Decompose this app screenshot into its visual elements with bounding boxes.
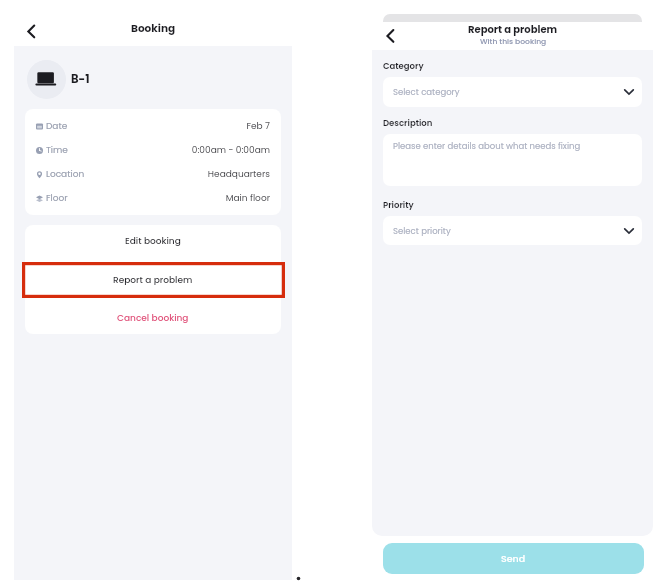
staticText: Report a problem <box>468 22 558 36</box>
staticText: Priority <box>383 199 414 211</box>
button[interactable]: Report a problem <box>25 257 281 303</box>
staticText: Description <box>383 117 433 129</box>
button[interactable]: Edit booking <box>25 225 281 257</box>
staticText: Please enter details about what needs fi… <box>393 140 581 152</box>
staticText: Booking <box>131 21 176 36</box>
button[interactable]: Back <box>376 25 398 47</box>
button[interactable]: Cancel booking <box>25 303 281 334</box>
staticText: Category <box>383 60 424 72</box>
staticText: Select priority <box>393 225 451 237</box>
staticText: Main floor <box>68 192 270 205</box>
staticText: Feb 7 <box>68 120 270 133</box>
button[interactable]: Back <box>20 17 42 39</box>
staticText: Select category <box>393 86 460 98</box>
button[interactable]: Please enter details about what needs fi… <box>383 134 642 186</box>
button[interactable]: Select priority <box>383 216 642 245</box>
button[interactable]: Send <box>383 543 644 574</box>
staticText: Location <box>46 168 85 181</box>
staticText: Edit booking <box>125 235 181 248</box>
staticText: Report a problem <box>113 274 193 287</box>
staticText: Headquarters <box>85 168 270 181</box>
staticText: Floor <box>46 192 68 205</box>
staticText: Date <box>46 120 68 133</box>
staticText: Send <box>501 552 526 565</box>
staticText: Cancel booking <box>117 312 189 325</box>
staticText: B-1 <box>71 71 90 87</box>
staticText: 0:00am - 0:00am <box>68 144 270 157</box>
button[interactable]: Select category <box>383 77 642 107</box>
staticText: Time <box>46 144 68 157</box>
staticText: With this booking <box>480 36 547 47</box>
